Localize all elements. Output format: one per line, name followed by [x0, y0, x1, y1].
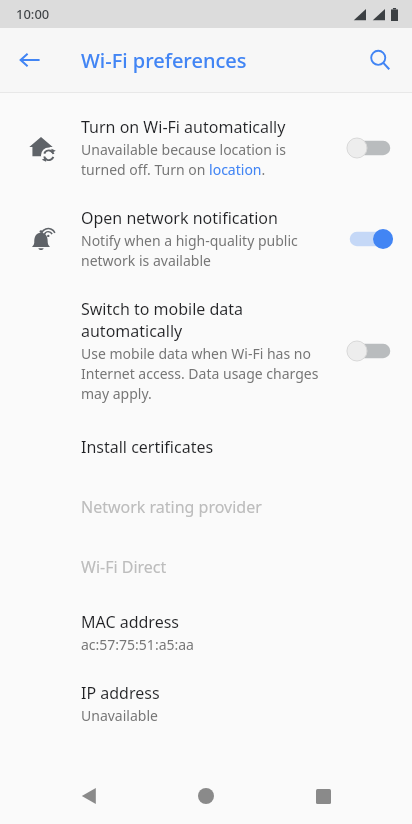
staticText: Open network notification [81, 207, 278, 229]
staticText: Install certificates [81, 436, 214, 458]
staticText: Turn on Wi-Fi automatically [81, 116, 286, 138]
staticText: IP address [81, 682, 160, 704]
button[interactable]: Search [356, 36, 404, 84]
button[interactable]: Open network notification [0, 193, 412, 284]
button[interactable]: Install certificates [0, 417, 412, 477]
button[interactable]: Wi-Fi Direct [0, 537, 412, 597]
staticText: Wi-Fi preferences [81, 47, 247, 74]
button[interactable]: Switch to mobile data automatically [0, 284, 412, 417]
button[interactable]: Back [61, 768, 117, 824]
button[interactable]: On [344, 222, 396, 256]
button[interactable]: Turn on Wi-Fi automatically [0, 102, 412, 193]
staticText: Network rating provider [81, 496, 262, 518]
staticText: Use mobile data when Wi-Fi has no Intern… [81, 344, 332, 403]
staticText: Notify when a high-quality public networ… [81, 231, 332, 270]
button[interactable]: Off [344, 334, 396, 368]
button[interactable]: IP address [0, 668, 412, 739]
button[interactable]: MAC address [0, 597, 412, 668]
staticText: Switch to mobile data automatically [81, 298, 332, 342]
staticText: ac:57:75:51:a5:aa [81, 635, 194, 654]
staticText: Wi-Fi Direct [81, 556, 167, 578]
staticText: Unavailable [81, 706, 158, 725]
button[interactable]: Back [6, 36, 54, 84]
button[interactable]: Off [344, 131, 396, 165]
staticText: 10:00 [16, 5, 50, 23]
staticText: MAC address [81, 611, 179, 633]
button[interactable]: Home [178, 768, 234, 824]
button[interactable]: Network rating provider [0, 477, 412, 537]
staticText: Unavailable because location is turned o… [81, 140, 332, 179]
button[interactable]: Recent apps [295, 768, 351, 824]
